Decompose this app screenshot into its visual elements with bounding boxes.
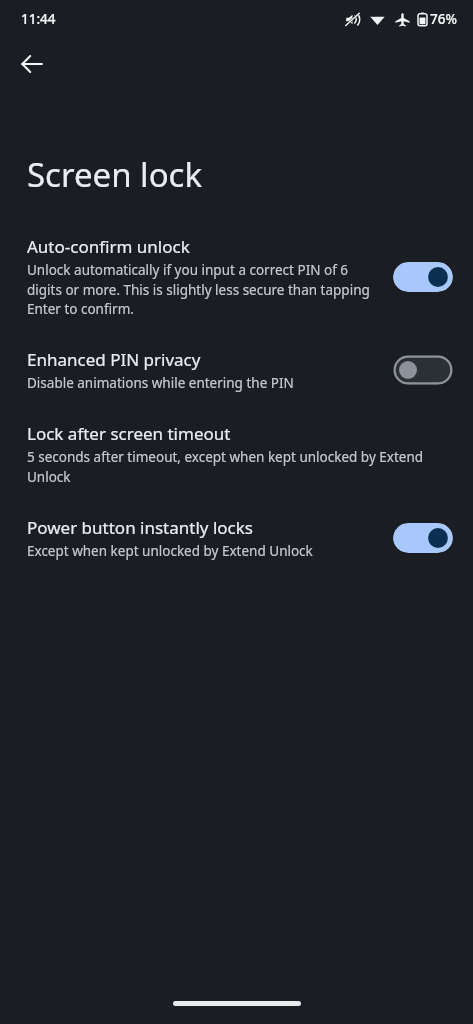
staticText: Except when kept unlocked by Extend Unlo… xyxy=(27,542,313,560)
staticText: Enhanced PIN privacy xyxy=(27,348,201,371)
button[interactable]: Back xyxy=(10,42,54,86)
staticText: Disable animations while entering the PI… xyxy=(27,374,294,392)
button[interactable]: Lock after screen timeout xyxy=(0,416,473,492)
button[interactable]: Toggle off xyxy=(393,355,453,385)
staticText: Power button instantly locks xyxy=(27,516,253,539)
button[interactable]: Toggle on xyxy=(393,262,453,292)
button[interactable]: Power button instantly locks xyxy=(0,510,473,566)
staticText: Lock after screen timeout xyxy=(27,422,231,445)
staticText: 11:44 xyxy=(21,10,56,28)
staticText: Auto-confirm unlock xyxy=(27,235,190,258)
staticText: Unlock automatically if you input a corr… xyxy=(27,261,385,318)
button[interactable]: Auto-confirm unlock xyxy=(0,229,473,324)
staticText: Screen lock xyxy=(27,152,203,197)
staticText: 76% xyxy=(430,10,457,28)
button[interactable]: Toggle on xyxy=(393,523,453,553)
staticText: 5 seconds after timeout, except when kep… xyxy=(27,448,445,486)
button[interactable]: Enhanced PIN privacy xyxy=(0,342,473,398)
